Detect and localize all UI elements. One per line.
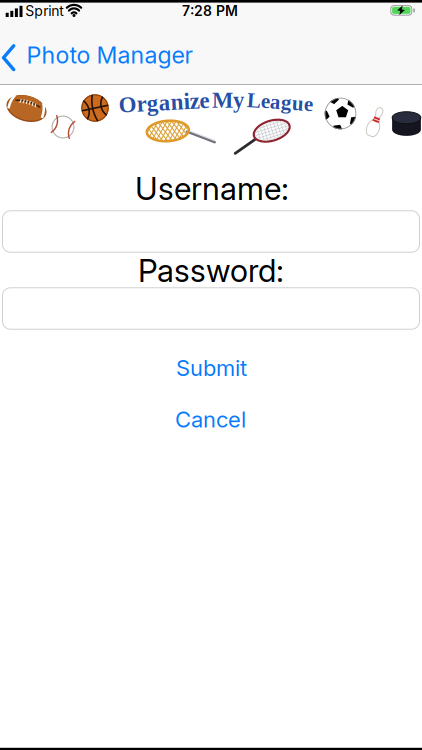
button[interactable]: Photo Manager bbox=[1, 44, 193, 72]
staticText: Photo Manager bbox=[26, 41, 193, 69]
staticText: League bbox=[247, 90, 313, 114]
staticText: Organize bbox=[118, 90, 209, 115]
button[interactable]: Submit bbox=[176, 355, 247, 381]
button[interactable]: Cancel bbox=[175, 406, 246, 433]
staticText: Sprint bbox=[25, 2, 64, 19]
staticText: Password: bbox=[138, 251, 284, 289]
staticText: My bbox=[212, 87, 244, 112]
staticText: 7:28 PM bbox=[182, 2, 238, 19]
staticText: Submit bbox=[176, 355, 247, 381]
staticText: Username: bbox=[135, 169, 289, 207]
staticText: Cancel bbox=[175, 406, 246, 433]
